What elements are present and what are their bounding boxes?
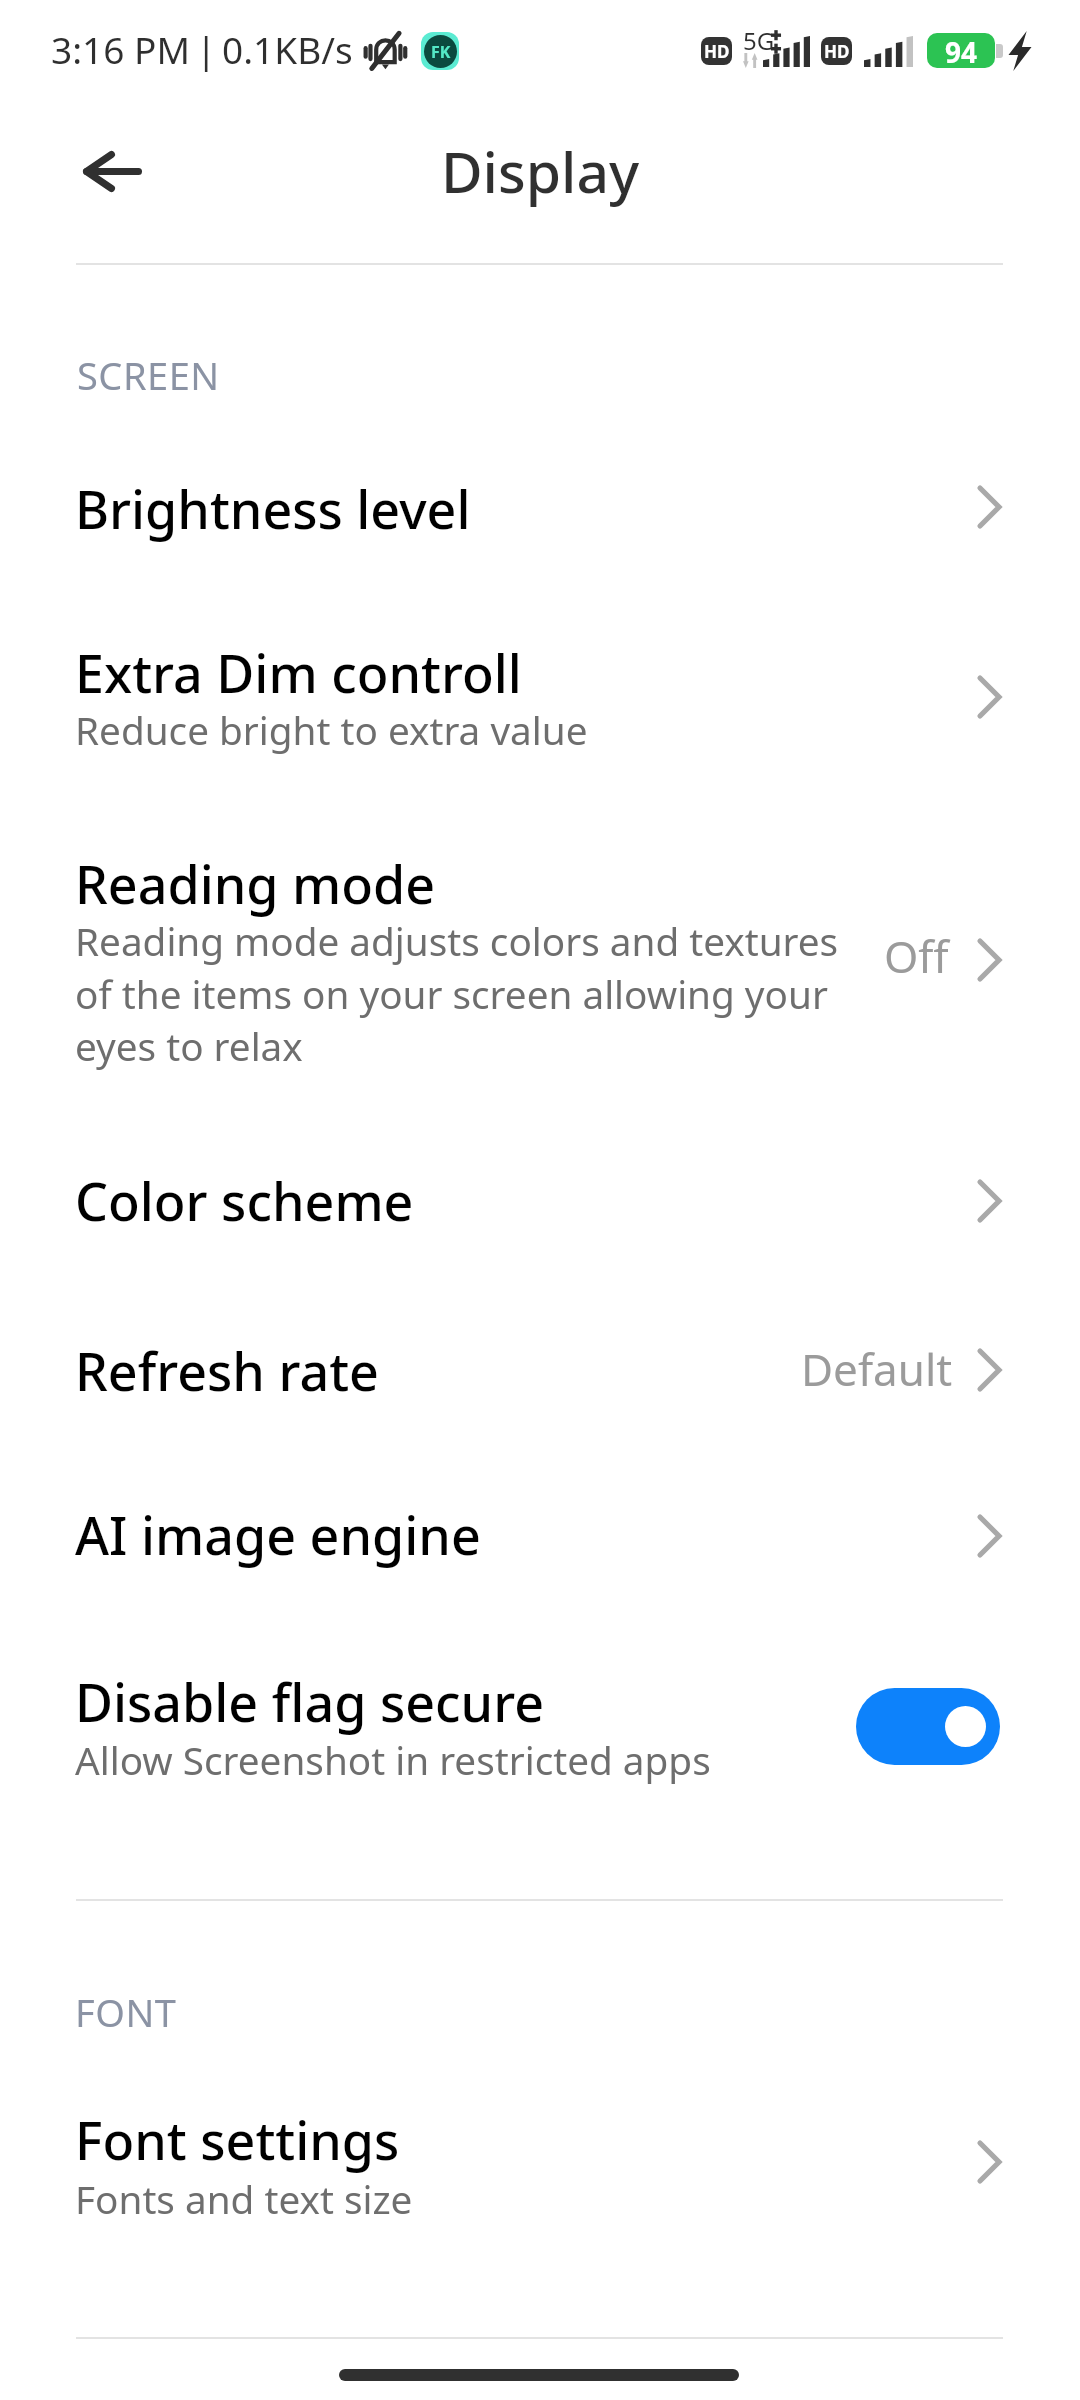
staticText: Refresh rate	[75, 1335, 379, 1406]
staticText: 5G	[743, 24, 775, 57]
staticText: Allow Screenshot in restricted apps	[75, 1734, 711, 1787]
button[interactable]: AI image engine	[0, 1460, 1080, 1610]
staticText: Reduce bright to extra value	[75, 704, 588, 757]
button[interactable]: Disable flag secure toggle, on	[856, 1688, 1000, 1765]
button[interactable]: Disable flag secure	[0, 1630, 1080, 1830]
staticText: |	[196, 23, 217, 73]
staticText: Fonts and text size	[75, 2173, 413, 2226]
staticText: HD	[824, 40, 850, 63]
staticText: Display	[0, 132, 1080, 210]
staticText: 0.1KB/s	[222, 24, 353, 74]
button[interactable]: Extra Dim controll	[0, 600, 1080, 790]
staticText: Color scheme	[75, 1165, 414, 1236]
staticText: Reading mode	[75, 848, 436, 919]
button[interactable]: Brightness level	[0, 420, 1080, 580]
staticText: 94	[945, 33, 978, 68]
staticText: FONT	[75, 1986, 177, 2038]
staticText: HD	[704, 40, 730, 63]
staticText: Font settings	[75, 2104, 400, 2175]
button[interactable]: Reading mode	[0, 810, 1080, 1120]
staticText: FK	[431, 41, 451, 63]
staticText: SCREEN	[77, 349, 220, 401]
staticText: Brightness level	[75, 473, 471, 544]
button[interactable]: Color scheme	[0, 1130, 1080, 1270]
staticText: AI image engine	[75, 1499, 481, 1570]
staticText: 3:16 PM	[51, 24, 190, 74]
staticText: Off	[884, 926, 949, 986]
button[interactable]: Refresh rate	[0, 1300, 1080, 1440]
button[interactable]: Back	[62, 122, 162, 222]
button[interactable]: Font settings	[0, 2060, 1080, 2270]
staticText: Reading mode adjusts colors and textures…	[75, 915, 865, 1072]
staticText: Disable flag secure	[75, 1666, 544, 1737]
staticText: Default	[801, 1339, 953, 1399]
staticText: Extra Dim controll	[75, 637, 522, 708]
